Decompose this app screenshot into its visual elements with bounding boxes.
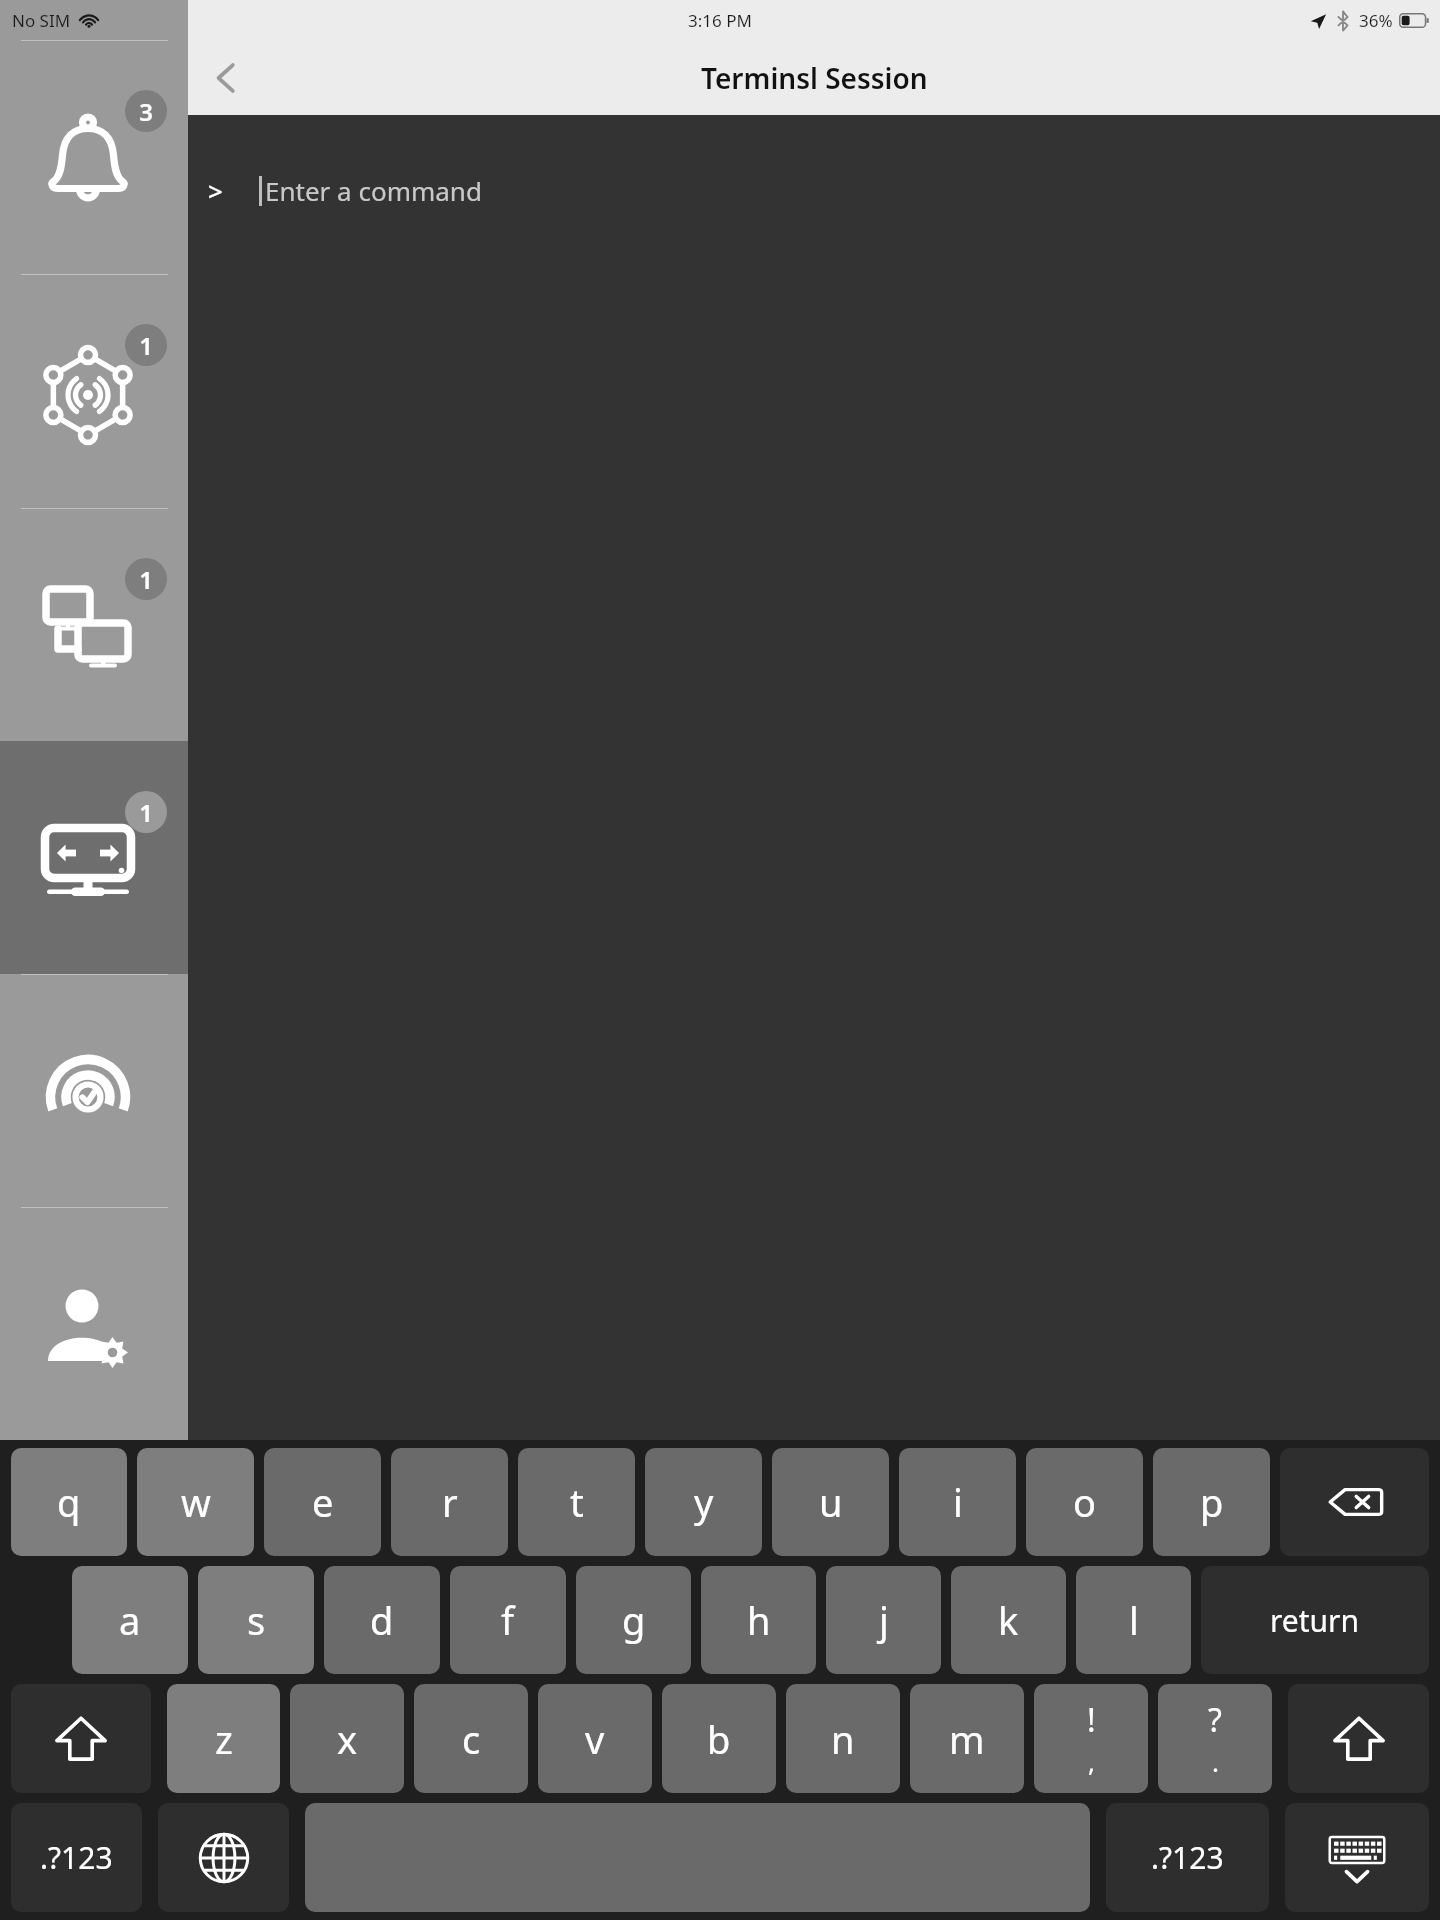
button[interactable]: Hide keyboard xyxy=(1285,1803,1429,1912)
staticText: d xyxy=(370,1594,394,1646)
staticText: return xyxy=(1270,1600,1360,1641)
button[interactable]: d xyxy=(324,1566,440,1674)
staticText: c xyxy=(462,1713,481,1765)
button[interactable]: r xyxy=(391,1448,508,1556)
staticText: j xyxy=(879,1594,889,1646)
staticText: x xyxy=(337,1713,358,1765)
button[interactable]: a xyxy=(72,1566,188,1674)
staticText: 3:16 PM xyxy=(688,9,752,32)
staticText: s xyxy=(247,1594,266,1646)
staticText: Terminsl Session xyxy=(701,59,928,97)
button[interactable]: Sidebar item xyxy=(0,974,188,1207)
staticText: 1 xyxy=(139,329,153,362)
staticText: p xyxy=(1200,1476,1224,1528)
button[interactable]: w xyxy=(137,1448,254,1556)
staticText: .?123 xyxy=(40,1837,113,1878)
button[interactable]: m xyxy=(910,1684,1024,1793)
staticText: , xyxy=(1088,1744,1095,1779)
button[interactable]: Sidebar item xyxy=(0,741,188,974)
button[interactable]: z xyxy=(167,1684,280,1793)
staticText: g xyxy=(622,1594,646,1646)
staticText: h xyxy=(747,1594,771,1646)
staticText: l xyxy=(1129,1594,1139,1646)
button[interactable]: i xyxy=(899,1448,1016,1556)
staticText: .?123 xyxy=(1151,1837,1224,1878)
button[interactable]: g xyxy=(576,1566,691,1674)
button[interactable]: p xyxy=(1153,1448,1270,1556)
button[interactable]: v xyxy=(538,1684,652,1793)
button[interactable]: f xyxy=(450,1566,566,1674)
staticText: i xyxy=(953,1476,963,1528)
button[interactable]: Shift xyxy=(1288,1684,1429,1793)
button[interactable]: b xyxy=(662,1684,776,1793)
button[interactable]: k xyxy=(951,1566,1066,1674)
button[interactable]: > xyxy=(208,173,1440,208)
button[interactable]: e xyxy=(264,1448,381,1556)
staticText: w xyxy=(181,1476,211,1528)
button[interactable]: Numbers xyxy=(11,1803,142,1912)
staticText: m xyxy=(949,1713,985,1765)
button[interactable]: h xyxy=(701,1566,816,1674)
staticText: t xyxy=(570,1476,584,1528)
staticText: ! xyxy=(1087,1698,1096,1742)
button[interactable]: Change keyboard xyxy=(158,1803,289,1912)
button[interactable]: Back xyxy=(194,46,258,110)
staticText: 1 xyxy=(139,796,153,829)
staticText: 1 xyxy=(139,563,153,596)
button[interactable]: o xyxy=(1026,1448,1143,1556)
button[interactable]: t xyxy=(518,1448,635,1556)
button[interactable]: Shift xyxy=(11,1684,151,1793)
button[interactable]: Sidebar item xyxy=(0,40,188,274)
staticText: r xyxy=(442,1476,458,1528)
button[interactable]: n xyxy=(786,1684,900,1793)
button[interactable]: j xyxy=(826,1566,941,1674)
staticText: No SIM xyxy=(12,9,71,32)
staticText: y xyxy=(694,1476,714,1528)
button[interactable]: ? xyxy=(1158,1684,1272,1793)
button[interactable]: q xyxy=(11,1448,127,1556)
button[interactable]: Numbers xyxy=(1106,1803,1269,1912)
button[interactable]: ! xyxy=(1034,1684,1148,1793)
button[interactable]: Sidebar item xyxy=(0,508,188,741)
button[interactable]: Return xyxy=(1201,1566,1429,1674)
button[interactable]: Sidebar item xyxy=(0,1207,188,1440)
staticText: 3 xyxy=(139,95,153,128)
button[interactable]: Sidebar item xyxy=(0,274,188,508)
staticText: z xyxy=(215,1713,233,1765)
staticText: Enter a command xyxy=(265,173,482,208)
staticText: a xyxy=(119,1594,141,1646)
staticText: n xyxy=(831,1713,855,1765)
button[interactable]: l xyxy=(1076,1566,1191,1674)
button[interactable]: Backspace xyxy=(1280,1448,1429,1556)
staticText: 36% xyxy=(1359,9,1393,32)
button[interactable]: u xyxy=(772,1448,889,1556)
button[interactable]: s xyxy=(198,1566,314,1674)
staticText: u xyxy=(819,1476,843,1528)
button[interactable]: y xyxy=(645,1448,762,1556)
staticText: ? xyxy=(1208,1698,1222,1742)
staticText: k xyxy=(998,1594,1019,1646)
staticText: v xyxy=(585,1713,605,1765)
button[interactable]: c xyxy=(414,1684,528,1793)
button[interactable]: x xyxy=(290,1684,404,1793)
staticText: b xyxy=(707,1713,731,1765)
staticText: q xyxy=(57,1476,81,1528)
staticText: e xyxy=(312,1476,334,1528)
staticText: o xyxy=(1073,1476,1096,1528)
staticText: > xyxy=(208,173,223,208)
staticText: f xyxy=(501,1594,515,1646)
staticText: . xyxy=(1212,1744,1219,1779)
